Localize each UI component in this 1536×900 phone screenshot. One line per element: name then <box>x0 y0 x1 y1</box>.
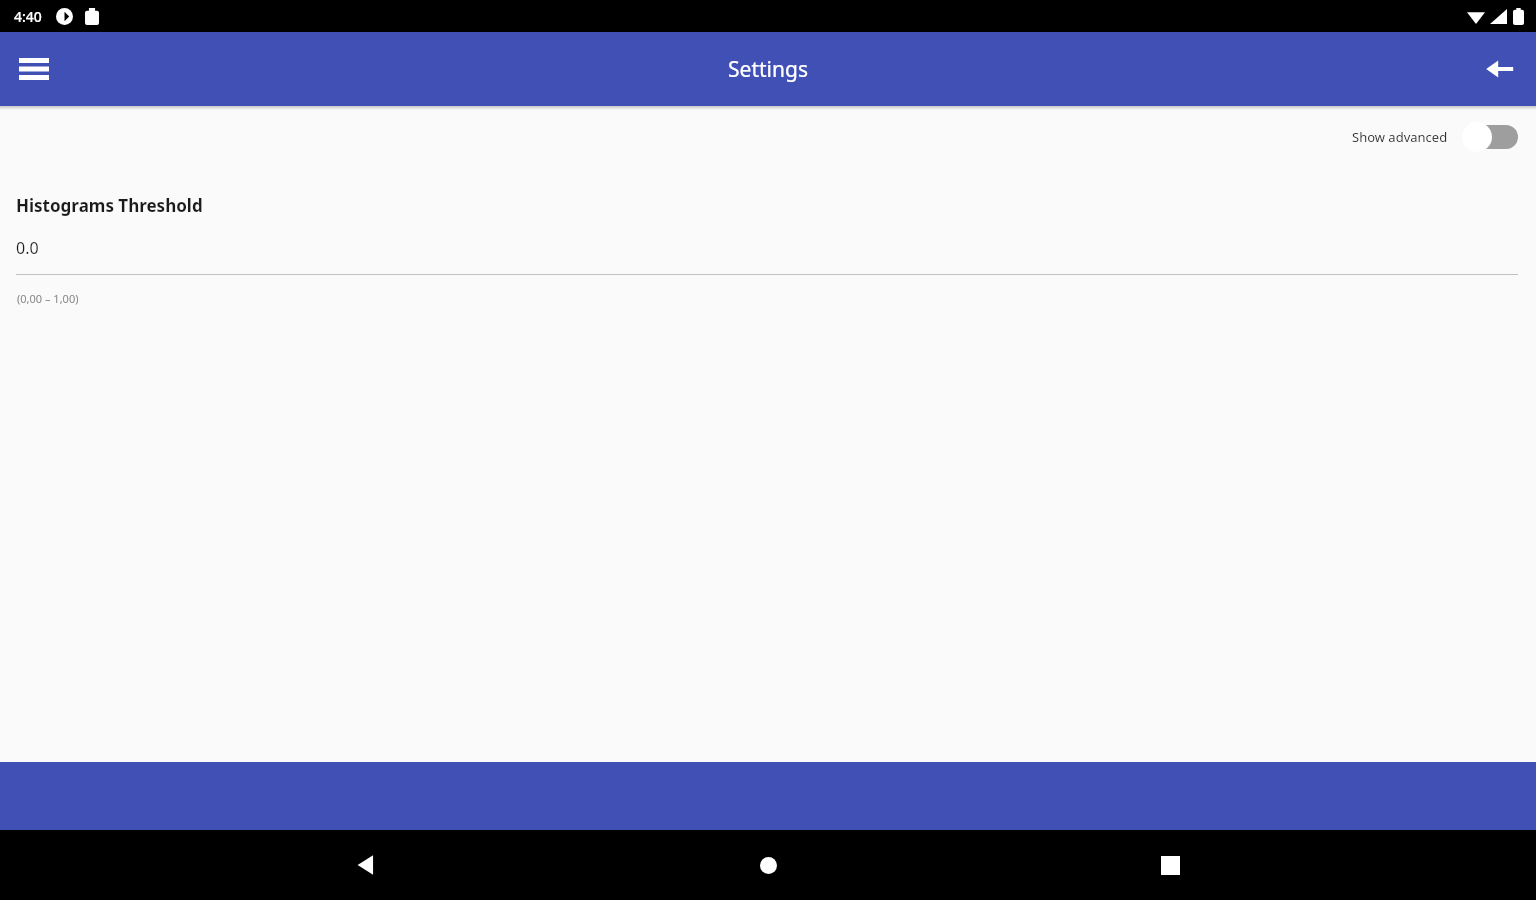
button[interactable]: Back <box>330 830 402 900</box>
button[interactable]: Menu <box>6 41 62 97</box>
staticText: 0.0 <box>16 237 39 259</box>
button[interactable]: Home <box>732 830 804 900</box>
staticText: Histograms Threshold <box>16 194 203 217</box>
button[interactable]: Show advanced <box>1348 115 1522 159</box>
button[interactable]: Back <box>1472 41 1528 97</box>
staticText: (0,00 – 1,00) <box>17 291 79 306</box>
staticText: 4:40 <box>14 7 42 26</box>
staticText: Show advanced <box>1352 128 1448 146</box>
staticText: Settings <box>728 55 808 84</box>
button[interactable]: Recent apps <box>1134 830 1206 900</box>
